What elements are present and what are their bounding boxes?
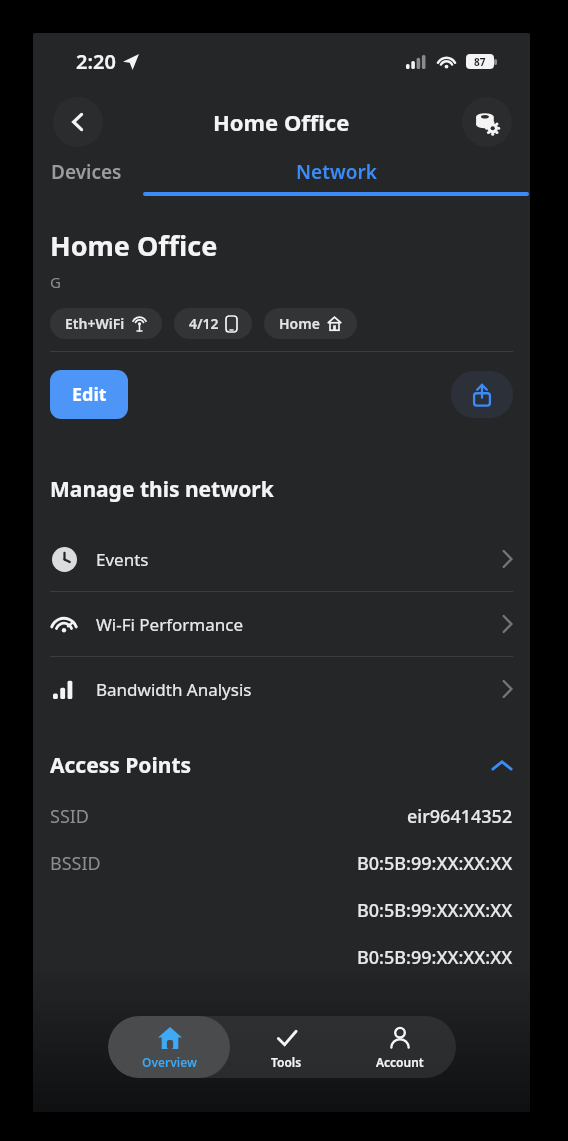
staticText: Home [279,314,320,333]
button[interactable]: Devices [50,159,123,192]
button[interactable]: Wi-Fi Performance [33,592,530,656]
button[interactable]: Eth+WiFi [50,308,162,339]
button[interactable]: Share [451,371,513,418]
staticText: B0:5B:99:XX:XX:XX [357,898,513,923]
button[interactable]: Tools [230,1016,343,1078]
staticText: Access Points [50,751,192,780]
staticText: 87 [474,55,486,69]
staticText: Overview [142,1054,197,1070]
staticText: B0:5B:99:XX:XX:XX [357,945,513,970]
button[interactable]: Account [343,1016,456,1078]
staticText: B0:5B:99:XX:XX:XX [357,851,513,876]
staticText: Tools [271,1054,302,1070]
button[interactable]: Edit [50,370,128,419]
staticText: Eth+WiFi [65,314,125,333]
staticText: Account [376,1054,424,1070]
staticText: 2:20 [76,48,116,75]
button[interactable]: Router settings [462,97,512,147]
staticText: Devices [51,159,122,185]
other: Collapse [491,759,513,772]
staticText: SSID [50,804,90,829]
staticText: Events [96,548,149,571]
staticText: Edit [72,382,107,407]
button[interactable]: Back [53,97,103,147]
button[interactable]: 4/12 [174,308,252,339]
button[interactable]: Access Points [50,751,513,780]
staticText: Network [296,159,377,185]
staticText: G [50,272,61,292]
button[interactable]: Home [264,308,357,339]
button[interactable]: Network [142,159,530,196]
staticText: Home Office [213,107,350,137]
staticText: eir96414352 [407,804,513,829]
staticText: 4/12 [189,314,219,333]
button[interactable]: Bandwidth Analysis [33,657,530,721]
button[interactable]: Events [33,527,530,591]
button[interactable]: Overview [108,1016,230,1078]
staticText: Wi-Fi Performance [96,613,244,636]
staticText: Home Office [50,227,218,264]
staticText: BSSID [50,851,101,876]
staticText: Manage this network [50,475,274,504]
staticText: Bandwidth Analysis [96,678,252,701]
